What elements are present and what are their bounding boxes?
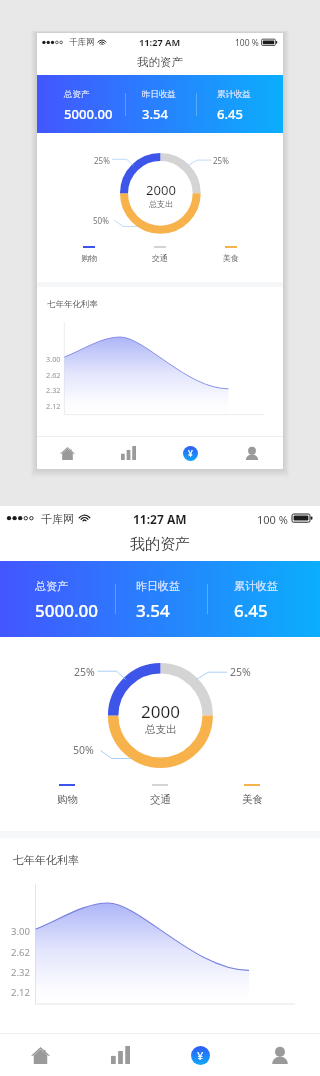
staticText: 2000 — [146, 181, 176, 199]
staticText: 2.62 — [46, 370, 61, 380]
button[interactable]: 美食 — [214, 246, 248, 263]
staticText: 总资产 — [64, 89, 90, 100]
staticText: 总资产 — [35, 579, 68, 593]
staticText: 2.32 — [46, 385, 61, 395]
button[interactable]: Profile — [240, 1034, 320, 1076]
button[interactable]: Wallet — [183, 446, 198, 461]
button[interactable]: 美食 — [230, 784, 274, 806]
button[interactable]: Wallet — [159, 437, 221, 469]
staticText: 6.45 — [234, 599, 268, 622]
other: Statistics — [111, 1046, 130, 1064]
button[interactable]: Home — [37, 437, 98, 469]
staticText: ¥ — [188, 448, 193, 460]
staticText: 2.62 — [11, 946, 30, 959]
button[interactable]: 购物 — [45, 784, 89, 806]
staticText: 3.54 — [136, 599, 170, 622]
staticText: 交通 — [150, 793, 171, 806]
staticText: 2.12 — [46, 401, 61, 411]
staticText: 总支出 — [145, 723, 177, 736]
staticText: 100 % — [257, 512, 288, 527]
staticText: 2.12 — [11, 986, 30, 999]
other: Profile — [245, 447, 259, 460]
other: Home — [31, 1047, 50, 1064]
button[interactable]: 交通 — [143, 246, 177, 263]
staticText: 25% — [213, 155, 229, 166]
staticText: 累计收益 — [217, 89, 251, 100]
staticText: 购物 — [81, 253, 98, 263]
staticText: 交通 — [152, 253, 169, 263]
staticText: 总支出 — [149, 199, 174, 209]
staticText: 我的资产 — [130, 535, 190, 554]
button[interactable]: Wallet — [160, 1034, 240, 1076]
staticText: 25% — [94, 155, 110, 166]
staticText: 3.54 — [142, 105, 168, 123]
staticText: 七年年化利率 — [47, 299, 98, 310]
staticText: 昨日收益 — [142, 89, 176, 100]
staticText: 千库网 — [69, 37, 95, 48]
staticText: 6.45 — [217, 105, 243, 123]
button[interactable]: Profile — [221, 437, 283, 469]
staticText: 11:27 AM — [139, 36, 181, 49]
staticText: 3.00 — [11, 925, 30, 938]
staticText: 11:27 AM — [133, 511, 187, 527]
button[interactable]: Statistics — [98, 437, 159, 469]
staticText: 千库网 — [41, 512, 74, 526]
staticText: 50% — [93, 215, 109, 226]
staticText: 2000 — [141, 700, 180, 723]
staticText: 100 % — [235, 37, 259, 49]
staticText: ¥ — [197, 1048, 204, 1063]
staticText: 七年年化利率 — [13, 853, 79, 867]
staticText: 25% — [230, 665, 251, 679]
button[interactable]: Statistics — [80, 1034, 160, 1076]
staticText: 5000.00 — [64, 105, 113, 123]
staticText: 3.00 — [46, 354, 61, 364]
other: Profile — [271, 1047, 289, 1064]
staticText: 5000.00 — [35, 599, 98, 622]
staticText: 我的资产 — [137, 55, 184, 70]
staticText: 购物 — [57, 793, 78, 806]
staticText: 2.32 — [11, 966, 30, 979]
other: Statistics — [121, 446, 136, 460]
button[interactable]: Home — [0, 1034, 80, 1076]
button[interactable]: 交通 — [138, 784, 182, 806]
button[interactable]: 购物 — [72, 246, 106, 263]
staticText: 昨日收益 — [136, 579, 180, 593]
staticText: 美食 — [223, 253, 240, 263]
staticText: 美食 — [242, 793, 263, 806]
staticText: 累计收益 — [234, 579, 278, 593]
staticText: 25% — [74, 665, 95, 679]
button[interactable]: Wallet — [191, 1046, 210, 1065]
other: Home — [60, 447, 75, 460]
staticText: 50% — [73, 743, 94, 757]
